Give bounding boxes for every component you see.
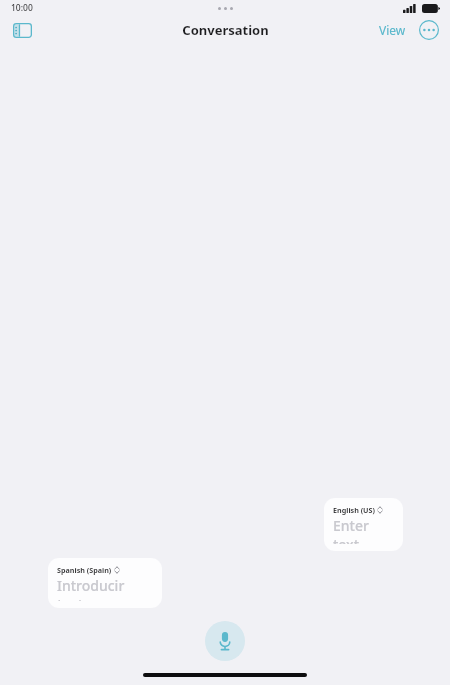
button[interactable]: More options — [418, 19, 440, 41]
staticText: View — [379, 22, 406, 38]
staticText: Conversation — [182, 21, 269, 39]
button[interactable]: English (US) — [324, 498, 403, 551]
button[interactable]: View — [377, 19, 408, 41]
staticText: Spanish (Spain) — [57, 565, 112, 575]
staticText: 10:00 — [11, 2, 33, 14]
button[interactable]: Show sidebar — [8, 16, 36, 44]
button[interactable]: Start listening — [205, 621, 245, 661]
staticText: Introducir texto — [57, 576, 153, 601]
button[interactable]: Spanish (Spain) — [48, 558, 162, 608]
staticText: English (US) — [333, 505, 375, 515]
staticText: Enter text — [333, 516, 394, 544]
